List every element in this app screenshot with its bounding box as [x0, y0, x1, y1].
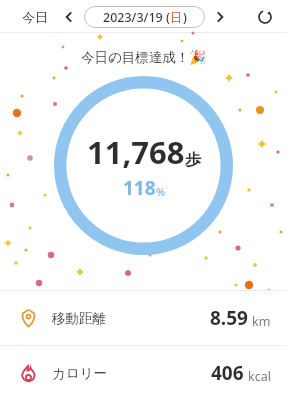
button[interactable]: Previous day — [58, 6, 80, 28]
button[interactable]: 今日 — [0, 3, 58, 31]
button[interactable]: Distance — [0, 291, 287, 345]
button[interactable]: Next day — [209, 6, 231, 28]
staticText: 今日 — [22, 9, 48, 25]
staticText: 今日の目標達成！🎉 — [81, 49, 207, 66]
staticText: 8.59 — [210, 305, 248, 331]
staticText: 歩 — [185, 150, 201, 170]
button[interactable]: Calories — [0, 346, 287, 400]
button[interactable]: 2023/3/19 ( — [84, 6, 205, 28]
staticText: % — [156, 184, 166, 199]
staticText: 2023/3/19 ( — [103, 9, 170, 26]
staticText: 11,768 — [87, 131, 185, 173]
staticText: 118 — [123, 175, 156, 201]
button[interactable]: Refresh — [251, 3, 279, 31]
staticText: kcal — [248, 368, 271, 385]
staticText: km — [252, 313, 271, 330]
staticText: 406 — [211, 360, 244, 386]
other: Distance — [20, 310, 37, 327]
staticText: ) — [183, 9, 187, 26]
staticText: 移動距離 — [52, 310, 106, 327]
staticText: 日 — [170, 10, 183, 26]
staticText: カロリー — [52, 365, 107, 382]
other: Calories — [20, 365, 37, 382]
